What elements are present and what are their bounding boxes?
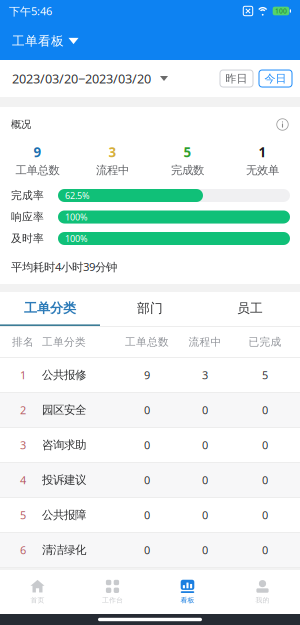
staticText: 0	[144, 543, 150, 557]
staticText: 昨日	[225, 72, 247, 85]
staticText: 1	[20, 368, 26, 382]
button[interactable]: 今日	[259, 70, 292, 87]
button[interactable]: 工单分类	[0, 292, 100, 326]
staticText: 流程中	[96, 163, 129, 177]
button[interactable]: 工作台	[75, 570, 150, 614]
staticText: 0	[144, 473, 150, 487]
staticText: 完成数	[171, 163, 204, 177]
staticText: 完成率	[11, 189, 44, 202]
staticText: 3	[20, 438, 26, 452]
button[interactable]: 我的	[225, 570, 300, 614]
staticText: 1	[258, 143, 266, 161]
staticText: 工单看板	[12, 33, 64, 49]
button[interactable]: Info	[276, 118, 289, 131]
staticText: 员工	[237, 300, 263, 316]
staticText: 及时率	[11, 232, 44, 245]
staticText: 0	[262, 438, 268, 452]
button[interactable]: 部门	[100, 292, 200, 326]
staticText: 0	[144, 508, 150, 522]
button[interactable]: 员工	[200, 292, 300, 326]
staticText: 9	[33, 143, 41, 161]
staticText: 2	[20, 403, 26, 417]
staticText: 工单总数	[125, 335, 169, 349]
staticText: 2023/03/20−2023/03/20	[12, 70, 151, 87]
staticText: 无效单	[246, 163, 279, 177]
staticText: 我的	[255, 596, 269, 605]
staticText: 工单总数	[15, 163, 59, 177]
staticText: 9	[144, 368, 150, 382]
staticText: 工单分类	[24, 300, 76, 316]
staticText: 投诉建议	[42, 473, 86, 487]
staticText: 排名	[12, 335, 34, 349]
staticText: 咨询求助	[42, 438, 86, 452]
staticText: 6	[20, 543, 26, 557]
staticText: 园区安全	[42, 403, 86, 417]
staticText: 4	[20, 473, 26, 487]
button[interactable]: 工单看板	[0, 22, 300, 60]
staticText: 5	[183, 143, 191, 161]
staticText: 公共报修	[42, 368, 86, 382]
staticText: 0	[262, 543, 268, 557]
staticText: 5	[20, 508, 26, 522]
staticText: 概况	[11, 118, 31, 131]
staticText: 0	[262, 473, 268, 487]
staticText: 清洁绿化	[42, 543, 86, 557]
button[interactable]: 看板	[150, 570, 225, 614]
staticText: 0	[144, 403, 150, 417]
staticText: 已完成	[248, 335, 281, 349]
staticText: 0	[262, 403, 268, 417]
staticText: 3	[108, 143, 116, 161]
staticText: 下午5:46	[9, 3, 52, 19]
staticText: 今日	[264, 72, 286, 85]
button[interactable]: 首页	[0, 570, 75, 614]
staticText: 0	[202, 543, 208, 557]
staticText: 工作台	[102, 596, 123, 605]
staticText: 响应率	[11, 210, 44, 224]
staticText: 3	[202, 368, 208, 382]
staticText: 0	[202, 438, 208, 452]
staticText: 看板	[180, 596, 194, 605]
staticText: 平均耗时4小时39分钟	[11, 259, 117, 274]
button[interactable]: 昨日	[220, 70, 253, 87]
staticText: 62.5%	[65, 189, 90, 202]
button[interactable]: 2023/03/20−2023/03/20	[0, 60, 168, 97]
staticText: 公共报障	[42, 508, 86, 522]
staticText: 100%	[65, 211, 88, 223]
staticText: 工单分类	[42, 335, 86, 349]
staticText: 0	[144, 438, 150, 452]
staticText: 首页	[30, 596, 44, 605]
staticText: 5	[262, 368, 268, 382]
staticText: 流程中	[188, 335, 221, 349]
staticText: 100	[275, 6, 287, 16]
staticText: 100%	[65, 232, 88, 245]
staticText: 0	[202, 473, 208, 487]
staticText: 部门	[137, 300, 163, 316]
staticText: 0	[202, 508, 208, 522]
staticText: 0	[202, 403, 208, 417]
staticText: 0	[262, 508, 268, 522]
